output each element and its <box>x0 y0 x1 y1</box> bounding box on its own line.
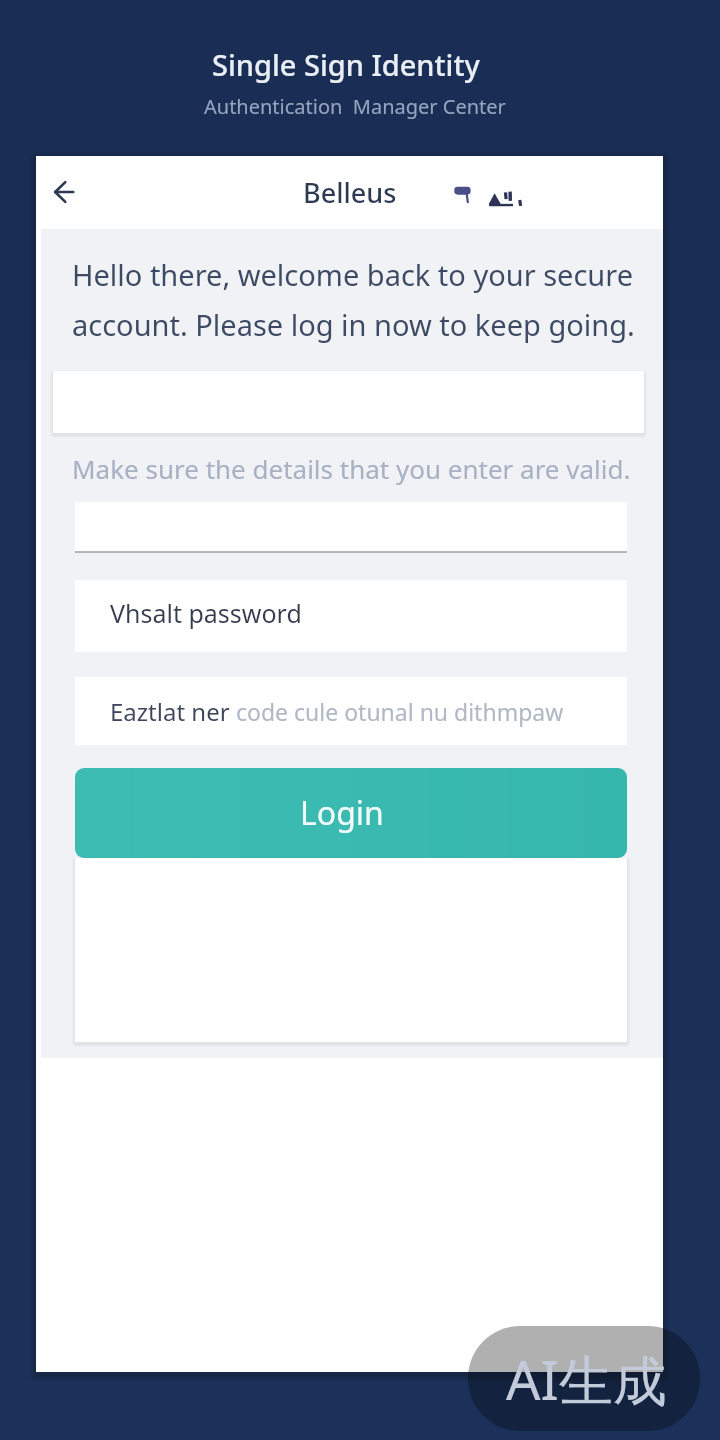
button[interactable]: Login <box>75 768 627 858</box>
button[interactable]: Email address field <box>75 502 627 553</box>
staticText: Make sure the details that you enter are… <box>72 451 631 486</box>
staticText: Hello there, welcome back to your secure… <box>72 255 635 345</box>
staticText: Vhsalt password <box>110 596 302 630</box>
staticText: Login <box>300 791 384 835</box>
button[interactable]: More options <box>478 170 538 230</box>
staticText: Single Sign Identity <box>212 45 480 84</box>
button[interactable]: Belleus <box>303 174 397 211</box>
button[interactable]: Back <box>38 166 90 218</box>
button[interactable]: Eaztlat ner <box>75 677 627 745</box>
staticText: code cule otunal nu dithmpaw <box>230 696 564 727</box>
staticText: AI生成 <box>506 1342 667 1416</box>
button[interactable]: Vhsalt password <box>75 580 627 652</box>
staticText: Eaztlat ner <box>110 695 230 728</box>
button[interactable]: Notifications <box>442 170 486 214</box>
staticText: Authentication Manager Center <box>204 93 506 120</box>
